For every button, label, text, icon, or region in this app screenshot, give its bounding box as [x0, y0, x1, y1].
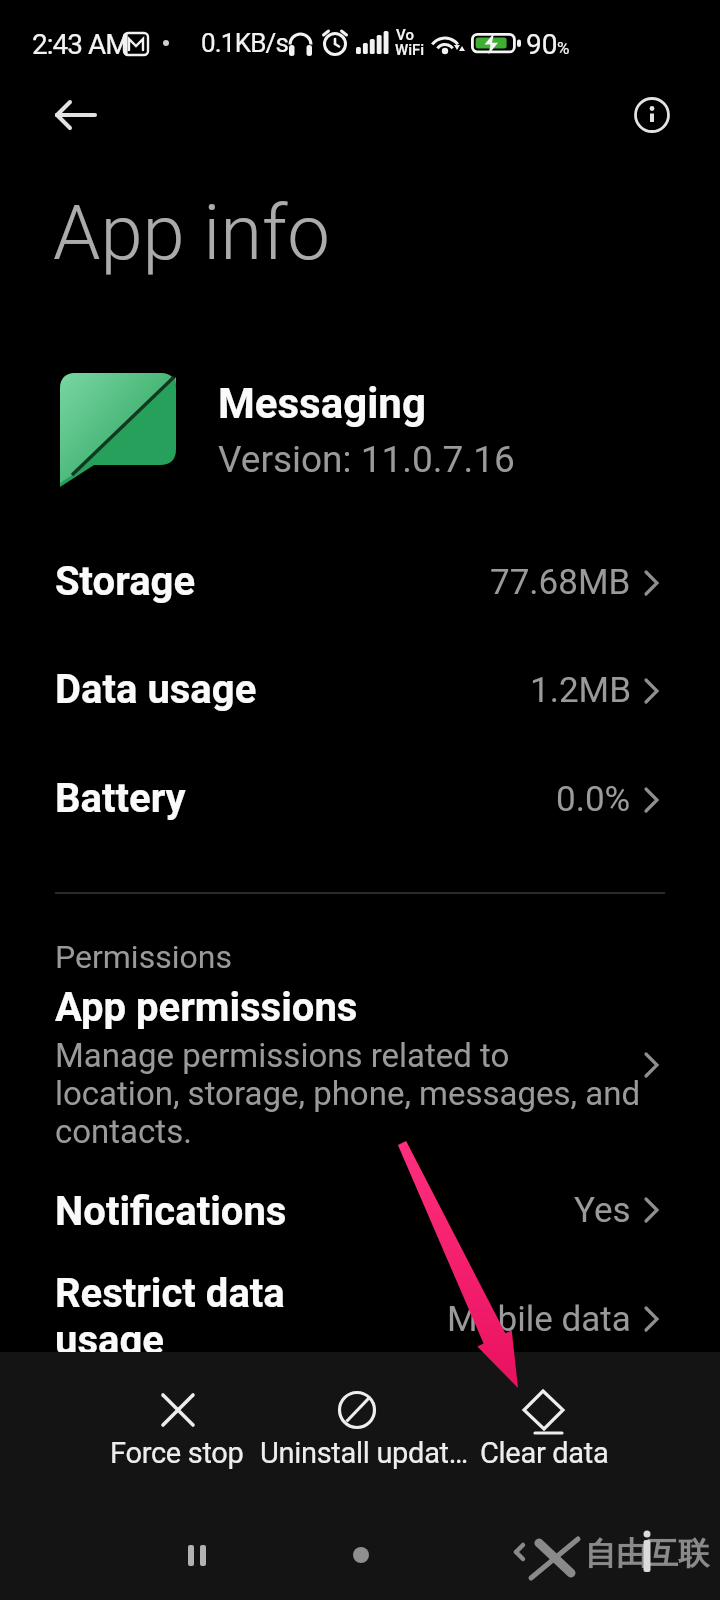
button[interactable] [76, 1382, 276, 1502]
staticText: App permissions [55, 984, 358, 1031]
staticText: Version: 11.0.7.16 [218, 438, 515, 481]
button[interactable] [0, 1175, 720, 1245]
staticText: Messaging [218, 379, 426, 428]
staticText: % [557, 38, 570, 58]
staticText: Clear data [480, 1436, 609, 1470]
staticText: Uninstall updat… [260, 1436, 468, 1470]
button[interactable] [36, 88, 108, 144]
staticText: App info [53, 188, 330, 277]
staticText: 90 [526, 28, 558, 61]
staticText: Force stop [110, 1436, 244, 1470]
button[interactable] [264, 1382, 464, 1502]
button[interactable] [444, 1382, 644, 1502]
button[interactable] [0, 746, 720, 854]
staticText: Restrict data usage [55, 1270, 285, 1364]
staticText: Storage [55, 558, 196, 605]
button[interactable] [0, 980, 720, 1160]
staticText: Permissions [55, 938, 232, 976]
button[interactable] [353, 1547, 369, 1563]
staticText: 77.68MB [490, 562, 631, 603]
staticText: Mobile data [447, 1299, 631, 1340]
staticText: 自由互联 [585, 1534, 709, 1573]
button[interactable] [0, 1270, 720, 1352]
staticText: 0.1KB/s [201, 28, 289, 58]
staticText: Notifications [55, 1188, 287, 1235]
staticText: Yes [574, 1190, 631, 1231]
staticText: Manage permissions related to location, … [55, 1036, 641, 1151]
staticText: 2:43 AM [32, 28, 129, 61]
staticText: 1.2MB [530, 670, 631, 711]
staticText: Vo [396, 26, 414, 44]
button[interactable] [0, 529, 720, 637]
staticText: 0.0% [556, 779, 631, 820]
staticText: Battery [55, 775, 186, 822]
button[interactable] [0, 637, 720, 745]
staticText: WiFi [395, 41, 425, 59]
staticText: Data usage [55, 666, 257, 713]
button[interactable] [628, 91, 676, 139]
